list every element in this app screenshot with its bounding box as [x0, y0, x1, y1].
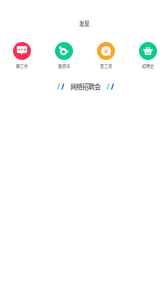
button[interactable]: 看资讯: [43, 42, 85, 74]
staticText: 网络招聘会: [70, 82, 100, 91]
button[interactable]: 招聘会: [127, 42, 168, 74]
button[interactable]: 聊工作: [1, 42, 43, 74]
staticText: 招聘会: [142, 64, 154, 69]
staticText: 查工资: [100, 64, 112, 69]
staticText: 看资讯: [58, 64, 70, 69]
button[interactable]: 查工资: [85, 42, 127, 74]
staticText: 发现: [79, 20, 89, 27]
staticText: 聊工作: [16, 64, 28, 69]
